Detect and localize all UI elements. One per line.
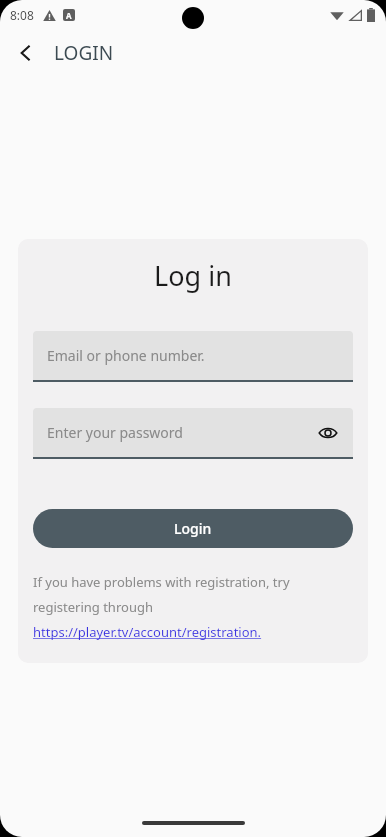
- button[interactable]: Login: [33, 509, 353, 548]
- staticText: If you have problems with registration, …: [33, 573, 290, 591]
- button[interactable]: Show password: [313, 418, 343, 448]
- staticText: Login: [174, 519, 212, 538]
- button[interactable]: Enter your password: [33, 408, 353, 459]
- button[interactable]: https://player.tv/account/registration.: [33, 623, 262, 641]
- button[interactable]: Email or phone number.: [33, 331, 353, 382]
- staticText: Enter your password: [47, 423, 183, 442]
- staticText: LOGIN: [54, 40, 114, 66]
- staticText: 8:08: [10, 7, 34, 23]
- button[interactable]: Back: [6, 33, 46, 73]
- staticText: registering through: [33, 598, 153, 616]
- staticText: Log in: [154, 257, 232, 294]
- staticText: https://player.tv/account/registration.: [33, 623, 262, 641]
- staticText: Email or phone number.: [47, 346, 205, 365]
- staticText: A: [66, 10, 72, 21]
